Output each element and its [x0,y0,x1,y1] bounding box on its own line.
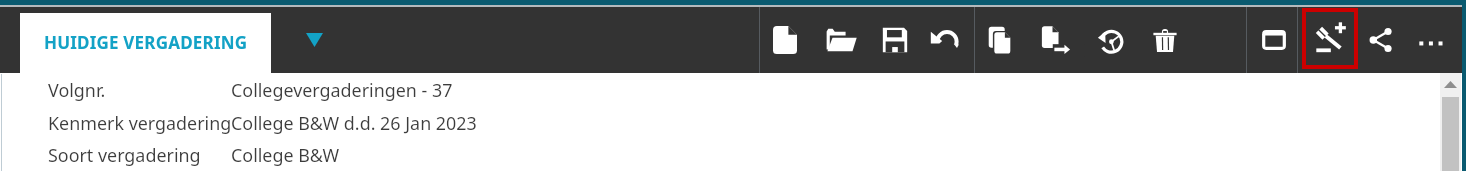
button[interactable]: Kenmerk vergadering [0,106,1466,139]
staticText: Kenmerk vergadering [48,111,232,135]
staticText: Volgnr. [48,78,106,102]
button[interactable]: Move [1033,18,1077,62]
button[interactable]: More options [1409,18,1453,62]
button[interactable]: Save [873,18,917,62]
button[interactable]: History [1087,18,1131,62]
button[interactable]: Scroll up [1440,73,1461,96]
button[interactable]: Copy [980,18,1024,62]
button[interactable]: New [763,18,807,62]
button[interactable]: Show meetings [296,22,332,58]
button[interactable]: Delete [1143,18,1187,62]
staticText: Soort vergadering [48,143,201,167]
staticText: College B&W d.d. 26 Jan 2023 [231,111,477,135]
button[interactable]: New decision [1306,12,1354,65]
button[interactable]: Volgnr. [0,73,1466,106]
staticText: Collegevergaderingen - 37 [231,78,453,102]
button[interactable]: Undo [925,18,969,62]
staticText: HUIDIGE VERGADERING [44,31,248,54]
button[interactable]: Window [1252,18,1296,62]
staticText: College B&W [231,143,340,167]
button[interactable]: HUIDIGE VERGADERING [20,13,271,79]
button[interactable]: Open [820,18,864,62]
button[interactable]: Soort vergadering [0,139,1466,171]
button[interactable]: Share [1359,18,1403,62]
